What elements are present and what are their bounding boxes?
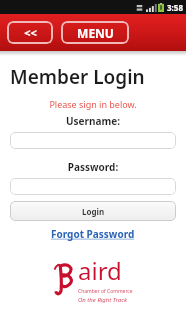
- button[interactable]: [10, 178, 176, 195]
- staticText: Chamber of Commerce: [78, 288, 133, 295]
- staticText: Login: [82, 206, 105, 217]
- button[interactable]: Login: [10, 201, 176, 221]
- button[interactable]: MENU: [61, 21, 129, 44]
- staticText: Please sign in below.: [0, 98, 186, 110]
- staticText: MENU: [77, 25, 114, 41]
- staticText: 3:58: [167, 2, 183, 13]
- button[interactable]: Back: [7, 21, 53, 44]
- staticText: <<: [24, 25, 37, 40]
- staticText: Username:: [0, 114, 186, 128]
- staticText: On the Right Track: [78, 296, 127, 304]
- staticText: Password:: [0, 160, 186, 174]
- staticText: Member Login: [10, 64, 145, 90]
- button[interactable]: Forgot Password: [47, 226, 139, 242]
- staticText: Forgot Password: [51, 227, 135, 241]
- button[interactable]: [10, 132, 176, 149]
- staticText: aird: [78, 254, 122, 287]
